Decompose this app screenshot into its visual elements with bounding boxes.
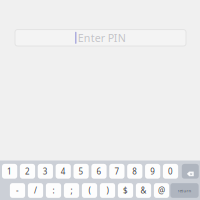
- staticText: /: [34, 185, 37, 196]
- button[interactable]: 0: [163, 164, 178, 179]
- button[interactable]: Enter PIN: [15, 29, 186, 46]
- button[interactable]: 3: [38, 164, 53, 179]
- staticText: Enter PIN: [78, 31, 126, 45]
- button[interactable]: ): [100, 183, 115, 198]
- staticText: 8: [132, 166, 137, 177]
- staticText: 5: [79, 166, 84, 177]
- button[interactable]: /: [28, 183, 43, 198]
- staticText: return: [177, 188, 191, 193]
- button[interactable]: :: [46, 183, 61, 198]
- button[interactable]: -: [10, 183, 25, 198]
- staticText: $: [123, 185, 128, 196]
- button[interactable]: ;: [64, 183, 79, 198]
- staticText: &: [140, 185, 146, 196]
- button[interactable]: (: [82, 183, 97, 198]
- staticText: 3: [43, 166, 48, 177]
- staticText: -: [16, 185, 19, 196]
- staticText: 9: [150, 166, 155, 177]
- button[interactable]: Delete: [182, 164, 199, 179]
- staticText: 1: [7, 166, 12, 177]
- staticText: 0: [168, 166, 173, 177]
- button[interactable]: 1: [2, 164, 17, 179]
- button[interactable]: 6: [91, 164, 107, 179]
- button[interactable]: $: [118, 183, 133, 198]
- button[interactable]: 4: [56, 164, 71, 179]
- button[interactable]: &: [136, 183, 151, 198]
- button[interactable]: 5: [73, 164, 89, 179]
- button[interactable]: @: [154, 183, 169, 198]
- staticText: 2: [25, 166, 30, 177]
- staticText: 4: [61, 166, 66, 177]
- staticText: 6: [96, 166, 101, 177]
- staticText: (: [88, 185, 90, 196]
- staticText: ;: [70, 185, 72, 196]
- staticText: :: [52, 185, 54, 196]
- button[interactable]: 8: [127, 164, 142, 179]
- button[interactable]: 2: [20, 164, 35, 179]
- staticText: @: [158, 185, 165, 196]
- button[interactable]: 9: [145, 164, 160, 179]
- staticText: 7: [114, 166, 119, 177]
- button[interactable]: 7: [109, 164, 124, 179]
- staticText: ): [106, 185, 108, 196]
- button[interactable]: return: [170, 183, 199, 198]
